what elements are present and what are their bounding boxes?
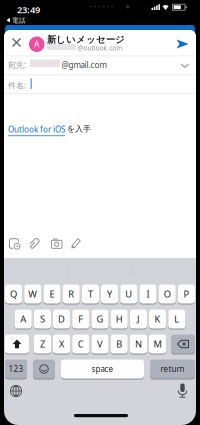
button[interactable]: K <box>149 309 166 328</box>
staticText: U <box>125 288 132 300</box>
staticText: J <box>137 313 140 325</box>
button[interactable]: S <box>34 309 51 328</box>
button[interactable]: Y <box>101 284 118 303</box>
staticText: T <box>88 288 93 300</box>
button[interactable]: U <box>120 284 137 303</box>
button[interactable]: L <box>168 309 185 328</box>
button[interactable]: Outlook for iOS <box>8 124 65 136</box>
button[interactable]: Q <box>5 284 22 303</box>
staticText: 23:49 <box>17 3 40 16</box>
button[interactable]: I <box>139 284 157 303</box>
staticText: Z <box>40 338 45 350</box>
staticText: Y <box>107 288 112 300</box>
staticText: 電話 <box>12 16 26 25</box>
button[interactable]: Send <box>175 38 190 49</box>
staticText: N <box>135 338 142 350</box>
button[interactable]: X <box>53 334 70 353</box>
staticText: M <box>154 338 162 350</box>
button[interactable]: H <box>111 309 128 328</box>
button[interactable]: G <box>91 309 109 328</box>
button[interactable]: Dictation <box>176 382 189 399</box>
staticText: 宛先: <box>8 59 26 70</box>
staticText: return <box>160 364 184 374</box>
staticText: を入手 <box>67 124 91 134</box>
button[interactable]: N <box>130 334 147 353</box>
staticText: 新しいメッセージ <box>47 34 125 45</box>
button[interactable]: M <box>149 334 166 353</box>
button[interactable]: Emoji <box>33 359 55 378</box>
staticText: X <box>59 338 64 350</box>
staticText: A <box>34 39 39 49</box>
staticText: E <box>49 288 54 300</box>
staticText: O <box>164 288 171 300</box>
button[interactable]: P <box>178 284 195 303</box>
button[interactable]: Shift <box>5 334 29 353</box>
staticText: H <box>116 313 123 325</box>
button[interactable]: Formatting <box>70 237 82 249</box>
button[interactable]: A <box>15 309 32 328</box>
staticText: space <box>91 364 113 374</box>
staticText: P <box>183 288 189 300</box>
button[interactable]: Next keyboard <box>9 384 23 398</box>
staticText: @gmail.com <box>61 59 106 70</box>
staticText: @outlook.com <box>77 43 122 52</box>
staticText: Outlook for iOS <box>8 124 65 135</box>
button[interactable]: R <box>63 284 80 303</box>
button[interactable]: Attach file <box>29 237 38 250</box>
button[interactable]: space <box>61 359 144 378</box>
staticText: A <box>20 313 26 325</box>
staticText: Q <box>10 288 17 300</box>
staticText: V <box>97 338 103 350</box>
button[interactable]: J <box>130 309 147 328</box>
button[interactable]: F <box>72 309 89 328</box>
staticText: 件名: <box>8 80 26 91</box>
staticText: G <box>96 313 103 325</box>
button[interactable]: W <box>24 284 41 303</box>
button[interactable]: O <box>159 284 176 303</box>
staticText: L <box>174 313 179 325</box>
staticText: 123 <box>8 364 23 374</box>
button[interactable]: Expand recipients <box>178 61 190 70</box>
button[interactable]: Delete <box>171 334 195 353</box>
button[interactable]: 123 <box>5 359 27 378</box>
button[interactable]: Attach photo <box>50 237 63 249</box>
staticText: C <box>78 338 84 350</box>
button[interactable]: E <box>43 284 61 303</box>
staticText: W <box>28 288 37 300</box>
button[interactable]: Send availability <box>6 236 20 249</box>
staticText: R <box>68 288 74 300</box>
button[interactable]: Z <box>34 334 51 353</box>
button[interactable]: V <box>91 334 109 353</box>
button[interactable]: D <box>53 309 70 328</box>
staticText: F <box>78 313 83 325</box>
staticText: I <box>146 288 149 300</box>
button[interactable]: return <box>150 359 195 378</box>
button[interactable]: Close <box>8 34 24 50</box>
staticText: K <box>155 313 161 325</box>
staticText: S <box>40 313 45 325</box>
button[interactable]: T <box>82 284 99 303</box>
staticText: D <box>58 313 65 325</box>
button[interactable]: B <box>111 334 128 353</box>
staticText: B <box>116 338 122 350</box>
button[interactable]: C <box>72 334 89 353</box>
